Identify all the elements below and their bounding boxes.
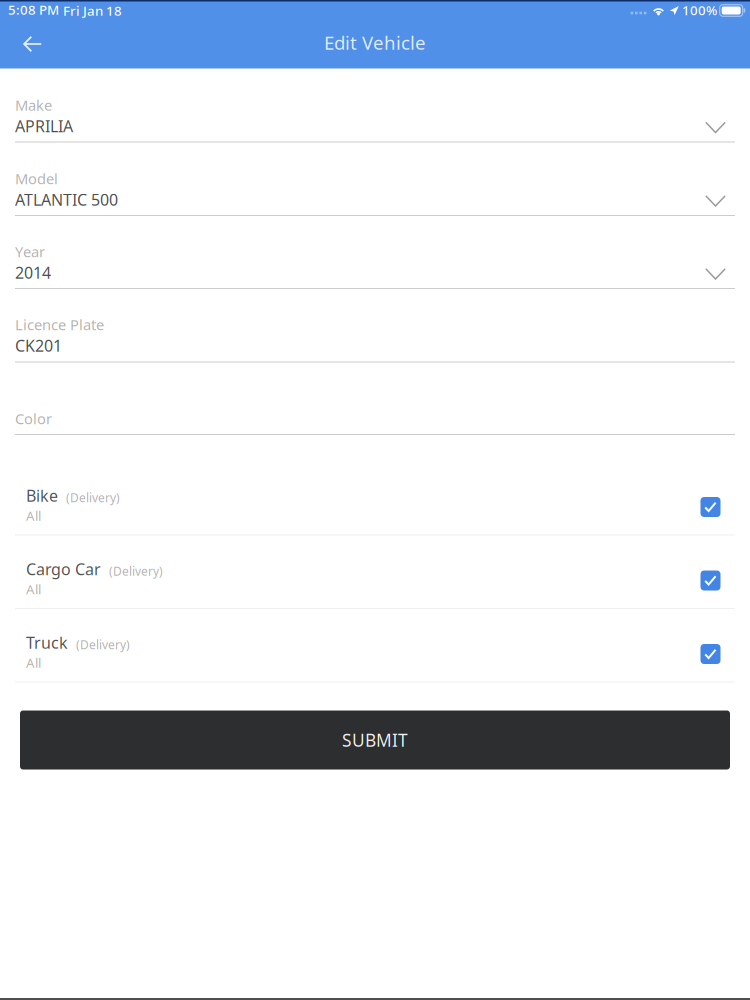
staticText: 2014 [15, 262, 51, 283]
staticText: SUBMIT [342, 728, 408, 751]
button[interactable]: Bike [0, 470, 750, 543]
staticText: Truck [26, 632, 68, 653]
staticText: (Delivery) [109, 563, 163, 579]
staticText: CK201 [15, 335, 62, 356]
staticText: Year [15, 242, 45, 261]
staticText: Edit Vehicle [324, 30, 426, 55]
staticText: All [26, 580, 41, 598]
staticText: ATLANTIC 500 [15, 189, 118, 210]
staticText: (Delivery) [66, 489, 120, 505]
staticText: (Delivery) [76, 636, 130, 652]
staticText: Model [15, 169, 58, 188]
staticText: Color [15, 409, 52, 428]
staticText: Fri Jan 18 [63, 2, 122, 19]
staticText: Licence Plate [15, 315, 104, 334]
staticText: All [26, 507, 41, 524]
button[interactable]: SUBMIT [20, 710, 730, 769]
staticText: All [26, 654, 41, 671]
button[interactable]: Back [7, 21, 57, 67]
staticText: APRILIA [15, 115, 73, 137]
staticText: Bike [26, 485, 58, 506]
staticText: 100% [682, 1, 717, 19]
staticText: Make [15, 95, 52, 115]
button[interactable]: Cargo Car [0, 543, 750, 617]
button[interactable]: Truck [0, 617, 750, 690]
staticText: Cargo Car [26, 558, 101, 580]
staticText: 5:08 PM [8, 1, 59, 18]
